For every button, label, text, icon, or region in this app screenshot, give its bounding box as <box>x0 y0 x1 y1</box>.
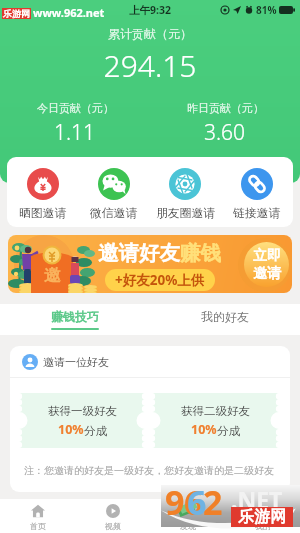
button[interactable]: 立即 <box>244 242 289 287</box>
staticText: 81% <box>256 3 277 17</box>
staticText: 立即 <box>253 247 281 265</box>
staticText: 3.60 <box>204 118 246 147</box>
staticText: 昨日贡献（元） <box>187 101 264 115</box>
staticText: 获得一级好友 <box>48 404 117 418</box>
staticText: 乐游网 <box>3 8 30 19</box>
button[interactable]: 微信邀请 <box>78 157 149 227</box>
staticText: 微信邀请 <box>90 206 138 221</box>
staticText: 10% <box>191 421 217 438</box>
button[interactable]: 朋友圈邀请 <box>149 157 221 227</box>
button[interactable]: 发现 <box>150 499 225 533</box>
staticText: 获得二级好友 <box>181 404 250 418</box>
staticText: 首页 <box>30 521 46 531</box>
button[interactable]: 视频 <box>75 499 150 533</box>
button[interactable]: 邀 <box>8 235 292 293</box>
staticText: 赚钱技巧 <box>51 309 99 324</box>
button[interactable]: 我的 <box>225 499 300 533</box>
staticText: 晒图邀请 <box>19 206 67 221</box>
staticText: 上午9:32 <box>129 3 171 17</box>
staticText: 我的好友 <box>201 309 249 324</box>
staticText: www.962.net <box>33 5 105 20</box>
button[interactable]: 晒图邀请 <box>7 157 78 227</box>
staticText: 294.15 <box>0 45 300 86</box>
staticText: 朋友圈邀请 <box>156 206 215 221</box>
staticText: 10% <box>58 421 84 438</box>
button[interactable]: 链接邀请 <box>221 157 293 227</box>
staticText: 邀请好友 <box>98 240 180 266</box>
staticText: 我的 <box>255 521 271 531</box>
staticText: 链接邀请 <box>233 206 281 221</box>
staticText: 累计贡献（元） <box>0 26 300 41</box>
staticText: 邀请一位好友 <box>43 355 109 369</box>
button[interactable]: 赚钱技巧 <box>0 304 150 335</box>
staticText: 今日贡献（元） <box>37 101 114 115</box>
staticText: 赚钱 <box>180 240 221 266</box>
staticText: 邀 <box>44 265 61 286</box>
staticText: 乐游网 <box>238 507 286 527</box>
staticText: 1.11 <box>54 118 96 147</box>
staticText: 9 <box>165 479 185 525</box>
staticText: 962 <box>165 479 222 525</box>
staticText: 分成 <box>84 424 107 438</box>
button[interactable]: 首页 <box>0 499 75 533</box>
button[interactable]: 获得二级好友 <box>152 393 279 448</box>
staticText: 6 <box>187 479 207 525</box>
staticText: 邀请 <box>253 265 281 283</box>
staticText: 注：您邀请的好友是一级好友，您好友邀请的是二级好友 <box>24 464 274 477</box>
button[interactable]: 获得一级好友 <box>19 393 145 448</box>
staticText: +好友20%上供 <box>115 271 205 289</box>
staticText: 发现 <box>180 521 196 531</box>
staticText: 视频 <box>105 521 121 531</box>
staticText: 分成 <box>217 424 240 438</box>
staticText: .NET <box>231 484 283 515</box>
button[interactable]: 我的好友 <box>150 304 300 335</box>
